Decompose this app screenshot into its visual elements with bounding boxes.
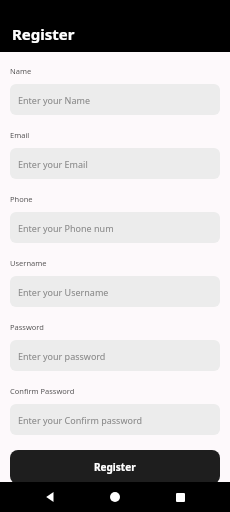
staticText: Enter your Email <box>18 158 88 170</box>
button[interactable]: Enter your Email <box>10 148 220 179</box>
staticText: Register <box>12 24 75 44</box>
staticText: Enter your Username <box>18 286 109 298</box>
staticText: Name <box>10 66 32 76</box>
button[interactable]: Enter your Name <box>10 84 220 115</box>
button[interactable]: Back <box>35 482 65 512</box>
button[interactable]: Home <box>100 482 130 512</box>
staticText: Username <box>10 258 47 268</box>
staticText: Password <box>10 322 44 332</box>
staticText: Register <box>94 460 136 474</box>
staticText: Enter your Name <box>18 94 90 106</box>
button[interactable]: Enter your Username <box>10 276 220 307</box>
staticText: Email <box>10 130 30 140</box>
button[interactable]: Recent apps <box>165 482 195 512</box>
button[interactable]: Register <box>10 450 220 484</box>
staticText: Enter your Phone num <box>18 222 114 234</box>
staticText: Enter your Confirm password <box>18 414 142 426</box>
staticText: Enter your password <box>18 350 106 362</box>
staticText: Phone <box>10 194 33 204</box>
button[interactable]: Enter your Phone num <box>10 212 220 243</box>
button[interactable]: Enter your password <box>10 340 220 371</box>
button[interactable]: Enter your Confirm password <box>10 404 220 435</box>
staticText: Confirm Password <box>10 386 75 396</box>
